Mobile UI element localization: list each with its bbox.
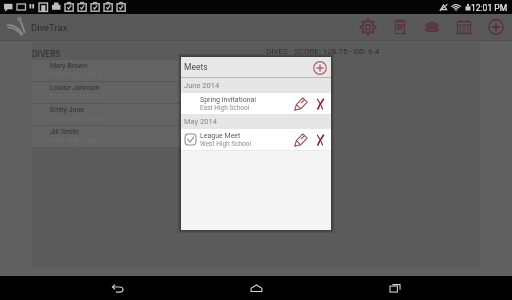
staticText: 12:01 PM xyxy=(471,3,508,13)
staticText: June 2014 xyxy=(184,81,220,90)
staticText: DiveTrax xyxy=(31,22,68,33)
button[interactable]: Settings xyxy=(352,14,384,40)
button[interactable]: Divers xyxy=(416,14,448,40)
staticText: Meets xyxy=(184,62,208,72)
staticText: May 2014 xyxy=(184,117,217,126)
staticText: DIVERS xyxy=(32,49,61,59)
staticText: Emily Jone xyxy=(50,106,85,114)
staticText: East High School xyxy=(200,104,250,112)
button[interactable]: Recents xyxy=(373,276,417,300)
staticText: DIVES - SCORE: 128.75 - DD: 6.4 xyxy=(266,47,380,56)
button[interactable]: Delete xyxy=(311,95,329,113)
button[interactable]: Scores xyxy=(384,14,416,40)
staticText: Jill Smith xyxy=(50,128,79,136)
button[interactable]: Home xyxy=(234,276,278,300)
button[interactable]: Jill Smith xyxy=(32,126,193,148)
button[interactable]: Add meet xyxy=(311,59,328,76)
button[interactable]: Delete xyxy=(311,131,329,149)
button[interactable]: Emily Jone xyxy=(32,104,193,126)
button[interactable]: Back xyxy=(95,276,139,300)
button[interactable]: Meets xyxy=(448,14,480,40)
staticText: Spring Invitational xyxy=(200,96,257,104)
button[interactable]: Edit xyxy=(291,94,311,114)
staticText: League Meet xyxy=(200,132,241,140)
button[interactable]: Edit xyxy=(291,130,311,150)
button[interactable]: Louise Johnson xyxy=(32,82,193,104)
button[interactable]: Spring Invitational xyxy=(181,93,331,114)
staticText: Louise Johnson xyxy=(50,84,100,92)
button[interactable]: Add xyxy=(480,14,512,40)
staticText: Mary Brown xyxy=(50,62,88,70)
staticText: West High School xyxy=(200,140,252,148)
button[interactable]: Mary Brown xyxy=(32,60,193,82)
button[interactable]: League Meet xyxy=(181,129,331,150)
